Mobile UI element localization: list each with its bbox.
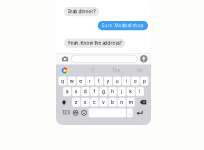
staticText: m bbox=[129, 99, 133, 105]
staticText: g bbox=[102, 89, 105, 94]
staticText: e bbox=[79, 78, 82, 84]
staticText: f bbox=[93, 89, 95, 94]
staticText: Grab dinner? bbox=[68, 9, 96, 14]
button[interactable]: b bbox=[108, 98, 117, 107]
staticText: h bbox=[111, 89, 114, 94]
staticText: . bbox=[129, 110, 130, 116]
button[interactable]: k bbox=[127, 87, 135, 96]
staticText: o bbox=[134, 78, 137, 84]
button[interactable]: x bbox=[81, 98, 89, 107]
button[interactable]: period bbox=[127, 108, 133, 117]
button[interactable]: Photos bbox=[61, 67, 68, 74]
button[interactable]: l bbox=[136, 87, 144, 96]
staticText: 123 bbox=[62, 110, 70, 115]
button[interactable]: I’m bbox=[128, 66, 151, 74]
button[interactable]: o bbox=[131, 76, 139, 85]
staticText: i bbox=[126, 78, 127, 84]
button[interactable]: f bbox=[90, 87, 98, 96]
button[interactable]: Emoji bbox=[80, 108, 88, 117]
button[interactable]: h bbox=[108, 87, 117, 96]
button[interactable]: z bbox=[72, 98, 80, 107]
staticText: a bbox=[66, 89, 69, 94]
button[interactable]: y bbox=[104, 76, 112, 85]
staticText: Sure. Meatball shop! bbox=[101, 23, 144, 28]
button[interactable]: t bbox=[95, 76, 103, 85]
button[interactable]: Numbers bbox=[61, 108, 71, 117]
button[interactable]: Camera bbox=[61, 56, 68, 62]
staticText: y bbox=[106, 78, 109, 84]
staticText: r bbox=[89, 78, 91, 84]
button[interactable]: p bbox=[140, 76, 148, 85]
button[interactable]: space bbox=[89, 108, 126, 117]
button[interactable]: j bbox=[118, 87, 126, 96]
staticText: The bbox=[112, 68, 121, 73]
staticText: z bbox=[75, 99, 78, 105]
button[interactable]: s bbox=[72, 87, 80, 96]
button[interactable]: q bbox=[58, 76, 67, 85]
button[interactable]: r bbox=[86, 76, 94, 85]
staticText: c bbox=[93, 99, 96, 105]
staticText: p bbox=[143, 78, 146, 84]
button[interactable]: c bbox=[90, 98, 98, 107]
button[interactable]: Send bbox=[140, 55, 147, 62]
button[interactable]: w bbox=[68, 76, 76, 85]
staticText: k bbox=[129, 89, 132, 94]
staticText: u bbox=[116, 78, 119, 84]
staticText: d bbox=[84, 89, 87, 94]
staticText: n bbox=[120, 99, 123, 105]
button[interactable]: Delete bbox=[137, 98, 149, 107]
staticText: x bbox=[84, 99, 87, 105]
staticText: s bbox=[75, 89, 78, 94]
staticText: Yeah. Know the address? bbox=[68, 40, 122, 46]
button[interactable]: Message field bbox=[71, 55, 137, 62]
staticText: b bbox=[111, 99, 114, 105]
button[interactable]: “I” bbox=[81, 66, 104, 74]
staticText: j bbox=[121, 89, 122, 94]
button[interactable]: m bbox=[127, 98, 135, 107]
button[interactable]: a bbox=[63, 87, 71, 96]
staticText: q bbox=[61, 78, 64, 84]
staticText: l bbox=[139, 89, 140, 94]
button[interactable]: v bbox=[99, 98, 108, 107]
button[interactable]: u bbox=[113, 76, 121, 85]
staticText: “I” bbox=[90, 68, 95, 73]
button[interactable]: Next keyboard bbox=[72, 108, 79, 117]
button[interactable]: e bbox=[77, 76, 85, 85]
button[interactable]: i bbox=[122, 76, 130, 85]
staticText: t bbox=[98, 78, 100, 84]
staticText: I’m bbox=[136, 68, 142, 73]
button[interactable]: d bbox=[81, 87, 89, 96]
button[interactable]: Shift bbox=[58, 98, 70, 107]
button[interactable]: g bbox=[99, 87, 108, 96]
staticText: v bbox=[102, 99, 105, 105]
button[interactable]: n bbox=[118, 98, 126, 107]
staticText: w bbox=[70, 78, 74, 84]
button[interactable]: Return bbox=[134, 108, 146, 117]
button[interactable]: The bbox=[105, 66, 128, 74]
